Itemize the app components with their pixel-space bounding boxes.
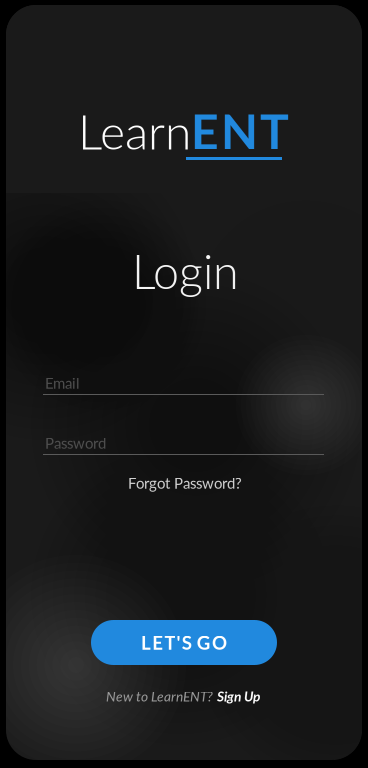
button[interactable]: Forgot Password? (128, 474, 242, 492)
button[interactable]: Sign Up (217, 688, 260, 704)
staticText: T (164, 631, 175, 654)
staticText: N (221, 102, 258, 160)
staticText: O (212, 631, 227, 654)
staticText: G (197, 631, 211, 654)
staticText: L (141, 631, 151, 654)
staticText: Password (45, 434, 106, 452)
button[interactable]: L (91, 620, 277, 665)
staticText: New to LearnENT? (106, 688, 213, 704)
staticText: Forgot Password? (128, 474, 242, 492)
staticText: ' (177, 631, 181, 654)
staticText: Email (45, 374, 80, 392)
staticText: S (182, 631, 192, 654)
staticText: Sign Up (217, 688, 260, 704)
staticText: E (152, 631, 163, 654)
staticText: E (191, 102, 219, 160)
staticText: T (260, 102, 289, 160)
staticText: Login (132, 243, 239, 299)
staticText: Learn (78, 102, 191, 160)
